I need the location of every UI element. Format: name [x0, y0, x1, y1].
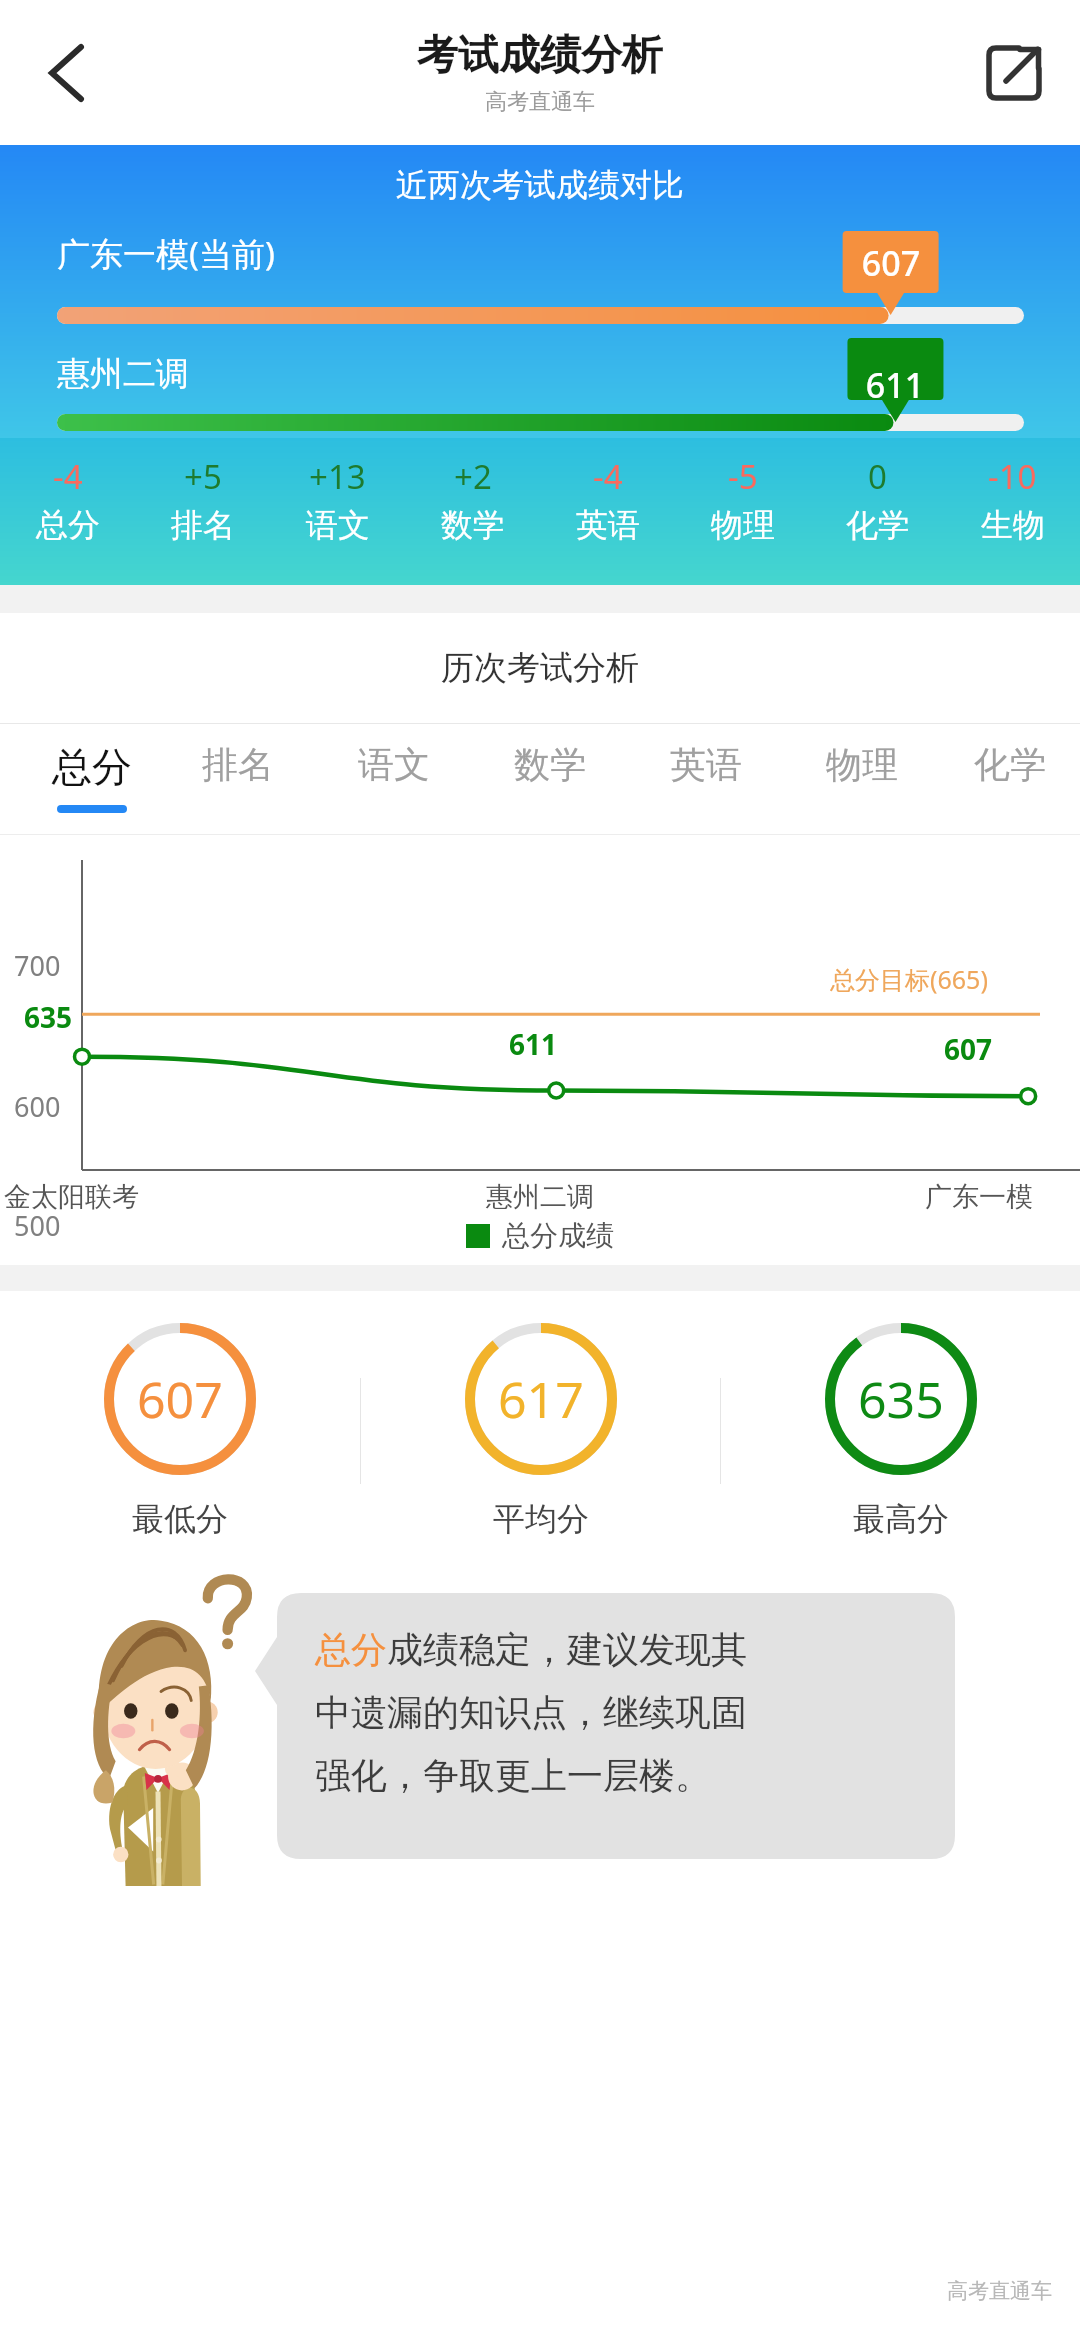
- staticText: 600: [14, 1088, 61, 1125]
- staticText: 635: [858, 1365, 944, 1433]
- staticText: 高考直通车: [947, 2278, 1052, 2304]
- button[interactable]: -4: [540, 454, 675, 585]
- staticText: 近两次考试成绩对比: [396, 165, 684, 205]
- staticText: 0: [868, 454, 887, 499]
- button[interactable]: 635: [721, 1291, 1080, 1571]
- button[interactable]: +13: [270, 454, 405, 585]
- staticText: 化学: [974, 742, 1046, 787]
- button[interactable]: 总分: [24, 724, 160, 834]
- button[interactable]: 607: [0, 1291, 360, 1571]
- button[interactable]: 0: [810, 454, 945, 585]
- button[interactable]: 英语: [628, 724, 784, 834]
- staticText: 成绩稳定，建议发现其: [387, 1627, 747, 1672]
- staticText: +13: [309, 454, 366, 499]
- button[interactable]: 排名: [160, 724, 316, 834]
- staticText: 物理: [826, 742, 898, 787]
- staticText: -4: [593, 454, 623, 499]
- staticText: 语文: [306, 505, 370, 545]
- button[interactable]: 数学: [472, 724, 628, 834]
- staticText: -5: [728, 454, 758, 499]
- staticText: 高考直通车: [485, 88, 595, 116]
- button[interactable]: -4: [0, 454, 135, 585]
- staticText: 607: [843, 240, 939, 286]
- staticText: 排名: [202, 742, 274, 787]
- staticText: 历次考试分析: [441, 647, 639, 689]
- staticText: 总分目标(665): [830, 962, 988, 996]
- button[interactable]: -10: [945, 454, 1080, 585]
- staticText: 611: [509, 1025, 558, 1063]
- staticText: 最低分: [132, 1499, 228, 1539]
- button[interactable]: Share: [972, 31, 1056, 115]
- staticText: 635: [24, 998, 73, 1036]
- staticText: 惠州二调: [486, 1180, 594, 1214]
- staticText: 平均分: [493, 1499, 589, 1539]
- staticText: 生物: [981, 505, 1045, 545]
- staticText: 607: [137, 1365, 223, 1433]
- button[interactable]: +5: [135, 454, 270, 585]
- staticText: 广东一模: [925, 1180, 1033, 1214]
- staticText: 607: [944, 1030, 993, 1068]
- button[interactable]: Back: [18, 25, 114, 121]
- staticText: 强化，争取更上一层楼。: [315, 1753, 711, 1798]
- staticText: 总分: [315, 1627, 387, 1672]
- button[interactable]: +2: [405, 454, 540, 585]
- staticText: 617: [498, 1365, 584, 1433]
- button[interactable]: -5: [675, 454, 810, 585]
- staticText: 700: [14, 947, 61, 984]
- staticText: 考试成绩分析: [417, 30, 663, 82]
- staticText: 金太阳联考: [4, 1180, 139, 1214]
- staticText: -4: [53, 454, 83, 499]
- button[interactable]: 语文: [316, 724, 472, 834]
- staticText: 英语: [576, 505, 640, 545]
- staticText: 英语: [670, 742, 742, 787]
- staticText: 广东一模(当前): [57, 231, 275, 276]
- button[interactable]: 物理: [784, 724, 940, 834]
- staticText: 总分: [52, 742, 132, 792]
- staticText: 总分: [36, 505, 100, 545]
- staticText: 总分成绩: [502, 1218, 614, 1253]
- staticText: 数学: [514, 742, 586, 787]
- staticText: -10: [988, 454, 1037, 499]
- button[interactable]: 617: [361, 1291, 720, 1571]
- staticText: 500: [14, 1207, 61, 1244]
- staticText: 化学: [846, 505, 910, 545]
- staticText: 数学: [441, 505, 505, 545]
- staticText: +5: [184, 454, 222, 499]
- staticText: 最高分: [853, 1499, 949, 1539]
- staticText: 中遗漏的知识点，继续巩固: [315, 1690, 747, 1735]
- staticText: 语文: [358, 742, 430, 787]
- staticText: 611: [847, 362, 943, 408]
- staticText: 物理: [711, 505, 775, 545]
- staticText: 惠州二调: [57, 353, 189, 395]
- button[interactable]: 化学: [940, 724, 1080, 834]
- staticText: +2: [454, 454, 492, 499]
- staticText: 排名: [171, 505, 235, 545]
